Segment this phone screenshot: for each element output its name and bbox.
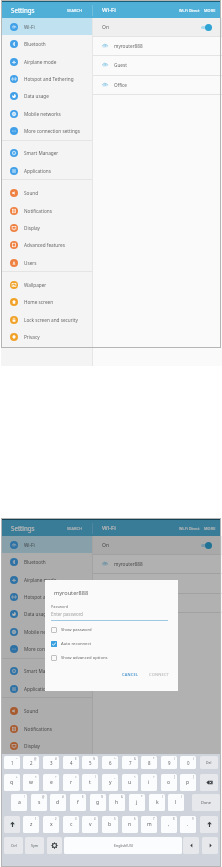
button[interactable]: Next xyxy=(202,837,218,854)
button[interactable]: o xyxy=(161,774,177,791)
button[interactable]: Guest xyxy=(93,55,222,75)
button[interactable]: CANCEL xyxy=(122,672,139,677)
button[interactable]: On xyxy=(93,536,222,554)
button[interactable]: Privacy xyxy=(1,846,92,863)
button[interactable]: Del xyxy=(200,756,218,769)
button[interactable]: Mobile networks xyxy=(1,105,92,122)
button[interactable]: Show password xyxy=(51,625,184,635)
button[interactable]: x xyxy=(43,816,59,833)
button[interactable]: SEARCH xyxy=(67,8,83,13)
button[interactable]: 2 xyxy=(23,756,39,769)
button[interactable]: h xyxy=(109,794,125,811)
button[interactable]: MORE xyxy=(204,8,216,13)
button[interactable]: Privacy xyxy=(1,328,92,345)
button[interactable]: English(US) xyxy=(64,837,182,854)
button[interactable]: Wallpaper xyxy=(1,794,92,811)
button[interactable]: 5 xyxy=(82,756,98,769)
button[interactable]: Shift xyxy=(200,816,218,833)
button[interactable]: Airplane mode xyxy=(1,53,92,70)
button[interactable]: Hotspot and Tethering xyxy=(1,70,92,87)
button[interactable]: 7 xyxy=(122,756,138,769)
button[interactable]: p xyxy=(180,774,196,791)
button[interactable]: Wi-Fi on xyxy=(201,24,212,31)
button[interactable]: d xyxy=(50,794,66,811)
button[interactable]: Mobile networks xyxy=(1,623,92,640)
button[interactable]: Notifications xyxy=(1,202,92,219)
button[interactable]: Home screen xyxy=(1,811,92,828)
button[interactable]: c xyxy=(63,816,79,833)
button[interactable]: SEARCH xyxy=(67,526,83,531)
button[interactable]: Display xyxy=(1,219,92,236)
button[interactable]: s xyxy=(31,794,47,811)
button[interactable]: On xyxy=(93,18,222,36)
button[interactable]: e xyxy=(43,774,59,791)
button[interactable]: Wi-Fi xyxy=(1,18,92,35)
button[interactable]: n xyxy=(122,816,138,833)
button[interactable]: Wi-Fi xyxy=(1,536,92,553)
button[interactable]: Ctrl xyxy=(4,837,23,854)
button[interactable]: Smart Manager xyxy=(1,662,92,679)
button[interactable]: More connection settings xyxy=(1,122,92,139)
button[interactable]: Airplane mode xyxy=(1,571,92,588)
button[interactable]: Wi-Fi Direct xyxy=(179,8,200,13)
button[interactable]: Shift xyxy=(4,816,20,833)
button[interactable]: Users xyxy=(1,254,92,271)
button[interactable]: k xyxy=(149,794,165,811)
button[interactable]: Auto reconnect xyxy=(51,639,184,649)
button[interactable]: Lock screen and security xyxy=(1,311,92,328)
button[interactable]: Smart Manager xyxy=(1,144,92,161)
button[interactable]: Keyboard settings xyxy=(47,837,62,854)
button[interactable]: Advanced features xyxy=(1,754,92,771)
button[interactable]: CONNECT xyxy=(149,672,170,677)
button[interactable]: Sound xyxy=(1,184,92,201)
button[interactable]: l xyxy=(168,794,184,811)
button[interactable]: 6 xyxy=(102,756,118,769)
button[interactable]: 1 xyxy=(4,756,20,769)
button[interactable]: w xyxy=(23,774,39,791)
button[interactable]: More connection settings xyxy=(1,640,92,657)
button[interactable]: r xyxy=(63,774,79,791)
button[interactable]: , xyxy=(161,816,177,833)
button[interactable]: Sym xyxy=(25,837,44,854)
button[interactable]: f xyxy=(70,794,86,811)
button[interactable]: Users xyxy=(1,772,92,789)
button[interactable]: myrouter888 xyxy=(93,36,222,56)
button[interactable]: a xyxy=(11,794,27,811)
button[interactable]: Wi-Fi Direct xyxy=(179,526,200,531)
button[interactable]: Home screen xyxy=(1,293,92,310)
button[interactable]: 3 xyxy=(43,756,59,769)
button[interactable]: Office xyxy=(93,75,222,95)
button[interactable]: v xyxy=(82,816,98,833)
button[interactable]: j xyxy=(129,794,145,811)
button[interactable]: Applications xyxy=(1,680,92,697)
button[interactable]: y xyxy=(102,774,118,791)
button[interactable]: m xyxy=(141,816,157,833)
button[interactable]: Applications xyxy=(1,162,92,179)
button[interactable]: 8 xyxy=(141,756,157,769)
button[interactable]: Bluetooth xyxy=(1,553,92,570)
button[interactable]: q xyxy=(4,774,20,791)
button[interactable]: myrouter888 xyxy=(93,554,222,574)
button[interactable]: Advanced features xyxy=(1,236,92,253)
button[interactable]: MORE xyxy=(204,526,216,531)
button[interactable]: b xyxy=(102,816,118,833)
button[interactable]: Data usage xyxy=(1,605,92,622)
button[interactable]: Sound xyxy=(1,702,92,719)
button[interactable]: z xyxy=(23,816,39,833)
button[interactable]: Bluetooth xyxy=(1,35,92,52)
button[interactable]: Office xyxy=(93,593,222,613)
button[interactable]: g xyxy=(90,794,106,811)
button[interactable]: 4 xyxy=(63,756,79,769)
button[interactable]: t xyxy=(82,774,98,791)
button[interactable]: Notifications xyxy=(1,720,92,737)
button[interactable]: i xyxy=(141,774,157,791)
button[interactable]: Guest xyxy=(93,573,222,593)
button[interactable]: Done xyxy=(192,794,220,811)
button[interactable]: 9 xyxy=(161,756,177,769)
button[interactable]: Lock screen and security xyxy=(1,829,92,846)
button[interactable]: Hotspot and Tethering xyxy=(1,588,92,605)
button[interactable]: 0 xyxy=(180,756,196,769)
button[interactable]: Wi-Fi on xyxy=(201,542,212,549)
button[interactable]: u xyxy=(122,774,138,791)
button[interactable]: Data usage xyxy=(1,87,92,104)
